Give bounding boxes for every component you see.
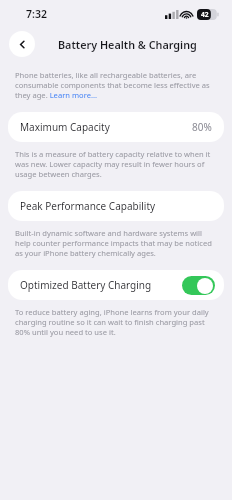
staticText: This is a measure of battery capacity re… xyxy=(15,149,218,179)
staticText: 80% xyxy=(192,120,212,134)
staticText: Battery Health & Charging xyxy=(58,37,197,52)
staticText: Peak Performance Capability xyxy=(20,199,156,213)
button[interactable]: Peak Performance Capability xyxy=(8,191,224,221)
staticText: 7:32 xyxy=(26,7,47,21)
staticText: To reduce battery aging, iPhone learns f… xyxy=(15,307,218,337)
button[interactable]: Maximum Capacity xyxy=(8,112,224,142)
staticText: 42 xyxy=(201,10,209,19)
button[interactable]: Back xyxy=(9,31,35,57)
button[interactable]: Optimized Battery Charging toggle xyxy=(182,276,215,295)
staticText: Optimized Battery Charging xyxy=(20,278,152,292)
staticText: Phone batteries, like all rechargeable b… xyxy=(15,70,218,100)
staticText: Built-in dynamic software and hardware s… xyxy=(15,228,218,258)
button[interactable]: Optimized Battery Charging xyxy=(8,270,224,300)
staticText: Maximum Capacity xyxy=(20,120,110,134)
